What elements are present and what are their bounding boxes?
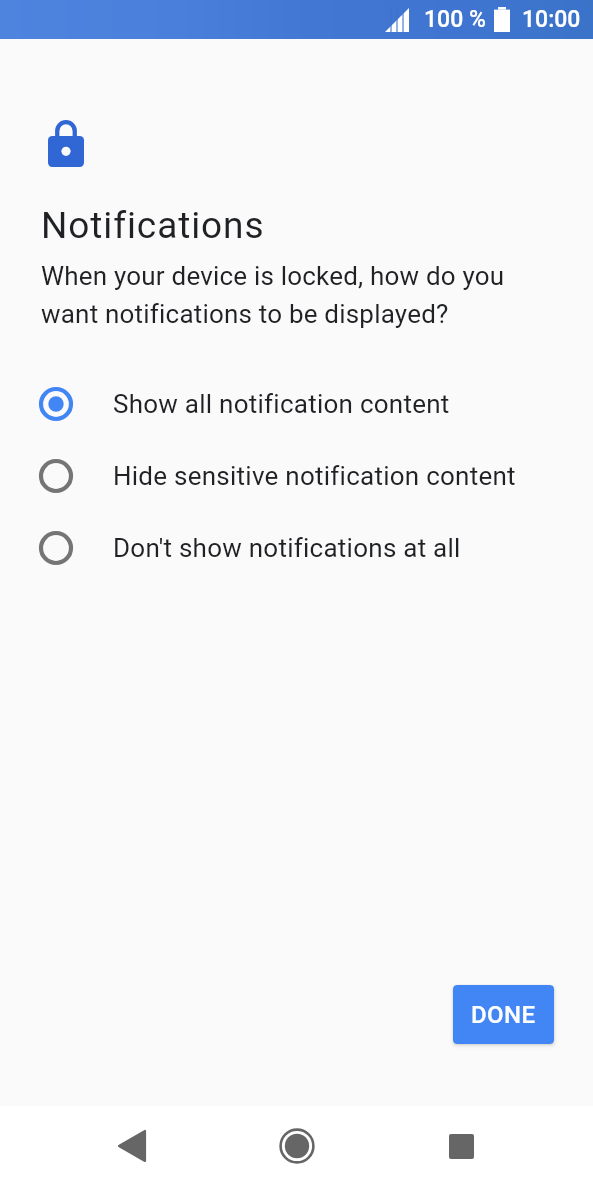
staticText: When your device is locked, how do you w… — [41, 261, 527, 329]
button[interactable]: Hide sensitive notification content — [0, 440, 593, 512]
staticText: 10:00 — [522, 6, 581, 33]
button[interactable]: Don't show notifications at all — [0, 512, 593, 584]
staticText: Hide sensitive notification content — [113, 461, 516, 491]
staticText: Show all notification content — [113, 389, 450, 419]
button[interactable]: DONE — [453, 985, 554, 1044]
staticText: Don't show notifications at all — [113, 533, 461, 563]
button[interactable]: Show all notification content — [0, 368, 593, 440]
button[interactable]: Back — [106, 1120, 158, 1172]
button[interactable]: Recent apps — [435, 1120, 487, 1172]
button[interactable]: Home — [271, 1120, 323, 1172]
staticText: Notifications — [41, 204, 265, 247]
staticText: 100 % — [424, 6, 486, 33]
staticText: DONE — [471, 1001, 536, 1029]
